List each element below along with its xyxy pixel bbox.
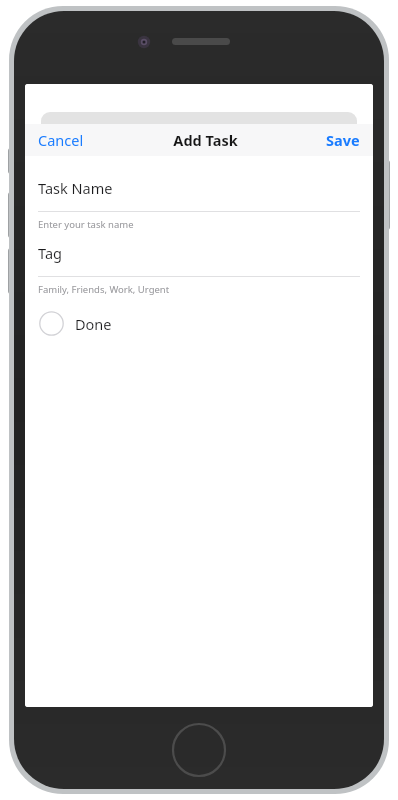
staticText: Cancel — [38, 130, 84, 150]
button[interactable]: Save — [313, 125, 373, 155]
staticText: Add Task — [173, 130, 238, 150]
staticText: Save — [326, 130, 360, 150]
staticText: Done — [75, 314, 112, 334]
button[interactable]: Cancel — [25, 125, 97, 155]
staticText: Tag — [38, 243, 62, 263]
button[interactable]: Done — [38, 308, 113, 339]
staticText: Enter your task name — [38, 218, 134, 231]
staticText: Task Name — [38, 178, 113, 198]
staticText: Family, Friends, Work, Urgent — [38, 283, 170, 296]
